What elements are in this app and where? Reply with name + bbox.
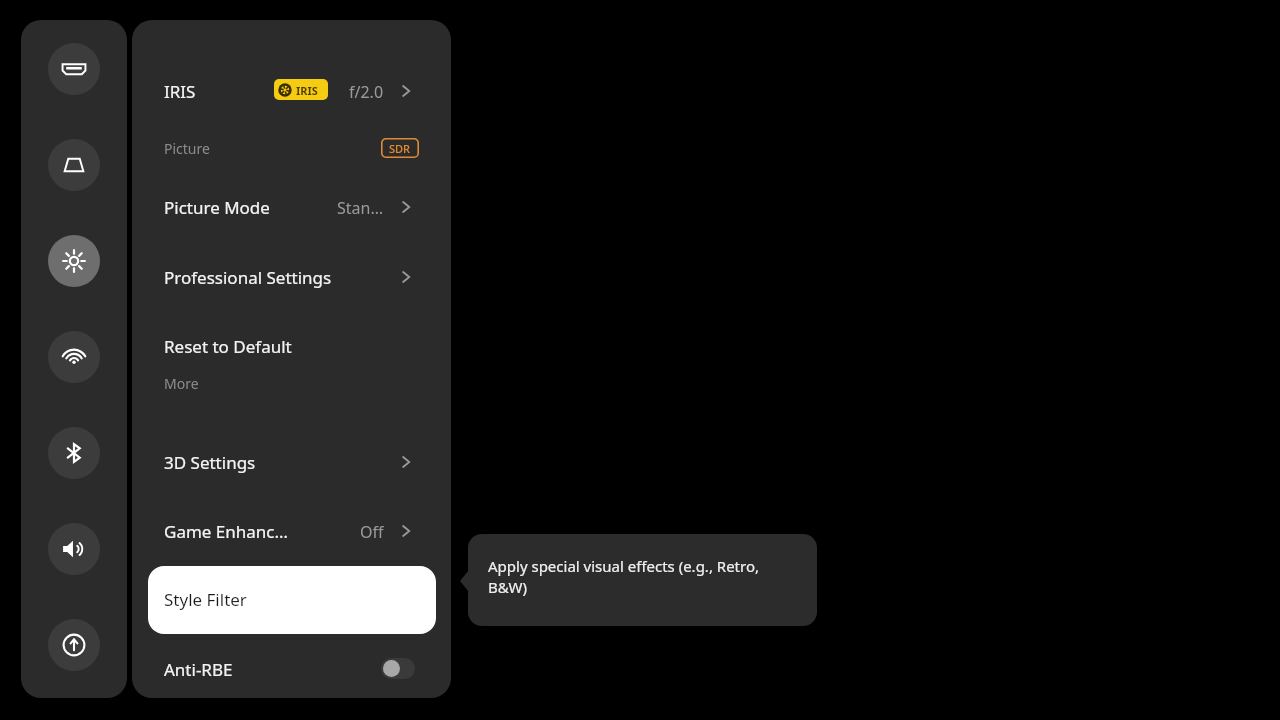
staticText: Apply special visual effects (e.g., Retr…	[488, 556, 788, 598]
button[interactable]: System update	[48, 619, 100, 671]
button[interactable]: Professional Settings	[132, 256, 451, 298]
button[interactable]: Game Enhanc…	[132, 510, 451, 552]
staticText: Off	[360, 521, 384, 543]
staticText: Stan…	[337, 197, 384, 219]
button[interactable]: Input source	[48, 43, 100, 95]
button[interactable]: Volume	[48, 523, 100, 575]
button[interactable]: 3D Settings	[132, 441, 451, 483]
staticText: f/2.0	[349, 81, 384, 103]
staticText: Game Enhanc…	[164, 520, 288, 543]
staticText: SDR	[389, 141, 411, 156]
button[interactable]: Anti-RBE	[132, 645, 451, 693]
button[interactable]: Bluetooth	[48, 427, 100, 479]
staticText: 3D Settings	[164, 451, 256, 474]
button[interactable]: Style Filter	[148, 566, 436, 634]
button[interactable]: Reset to Default	[132, 325, 451, 367]
staticText: Style Filter	[164, 588, 247, 611]
button[interactable]: Wi-Fi	[48, 331, 100, 383]
staticText: IRIS	[296, 83, 318, 98]
staticText: Anti-RBE	[164, 658, 233, 681]
staticText: Picture	[164, 139, 210, 158]
staticText: More	[164, 374, 199, 393]
staticText: Picture Mode	[164, 196, 270, 219]
staticText: Professional Settings	[164, 266, 332, 289]
button[interactable]: Picture Mode	[132, 186, 451, 228]
staticText: IRIS	[164, 80, 196, 103]
button[interactable]: IRIS	[132, 70, 451, 112]
button[interactable]: Keystone	[48, 139, 100, 191]
button[interactable]: Brightness	[48, 235, 100, 287]
staticText: Reset to Default	[164, 335, 292, 358]
